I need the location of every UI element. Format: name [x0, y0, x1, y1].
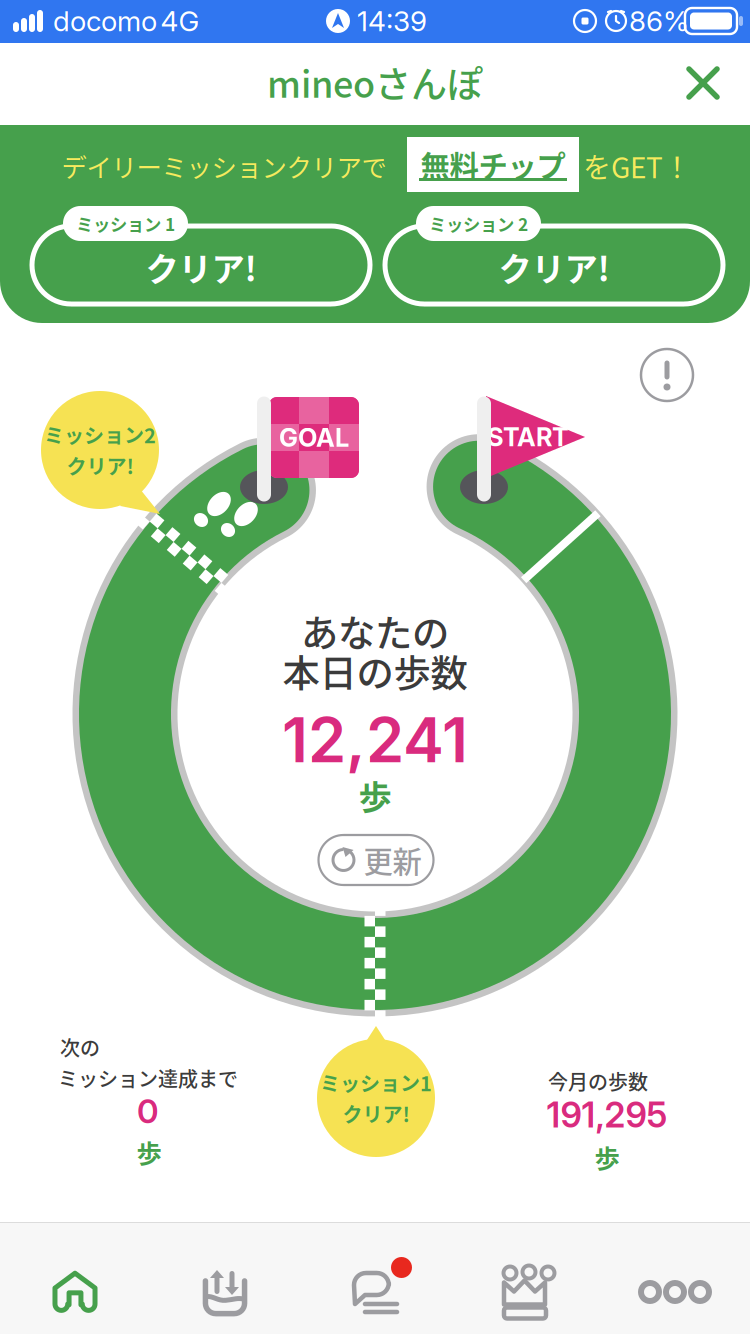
- button[interactable]: ヘルプ: [638, 346, 696, 404]
- staticText: クリア!: [145, 243, 256, 291]
- staticText: 無料チップ: [420, 143, 565, 186]
- staticText: mineoさんぽ: [267, 56, 483, 108]
- button[interactable]: 更新: [314, 831, 438, 889]
- staticText: クリア!: [342, 1099, 409, 1128]
- staticText: 更新: [363, 839, 421, 881]
- staticText: クリア!: [66, 451, 133, 480]
- staticText: 4G: [160, 4, 199, 38]
- staticText: デイリーミッションクリアで: [61, 148, 386, 184]
- staticText: ミッション1: [320, 1068, 432, 1097]
- button[interactable]: 閉じる: [665, 45, 741, 121]
- button[interactable]: クリア!: [32, 206, 370, 306]
- staticText: 歩: [358, 771, 391, 819]
- button[interactable]: クリア!: [385, 206, 723, 306]
- staticText: 0: [137, 1091, 159, 1131]
- staticText: ミッション 1: [76, 211, 175, 236]
- staticText: をGET！: [583, 146, 691, 186]
- staticText: ミッション 2: [429, 211, 528, 236]
- staticText: 14:39: [357, 4, 427, 38]
- button[interactable]: ランキング: [450, 1222, 600, 1334]
- staticText: あなたの: [301, 604, 449, 658]
- staticText: START: [487, 422, 569, 452]
- staticText: ミッション達成まで: [58, 1063, 238, 1092]
- button[interactable]: チャット: [300, 1222, 450, 1334]
- staticText: 191,295: [546, 1094, 667, 1136]
- button[interactable]: ホーム: [0, 1222, 150, 1334]
- staticText: 今月の歩数: [548, 1066, 648, 1095]
- staticText: docomo: [53, 4, 157, 38]
- button[interactable]: その他: [600, 1222, 750, 1334]
- staticText: 歩: [136, 1134, 161, 1170]
- staticText: クリア!: [498, 243, 609, 291]
- staticText: 86%: [629, 4, 689, 38]
- staticText: 12,241: [282, 703, 468, 777]
- staticText: 次の: [60, 1032, 100, 1061]
- staticText: ミッション2: [44, 420, 156, 449]
- staticText: GOAL: [279, 422, 349, 453]
- staticText: 本日の歩数: [282, 644, 467, 698]
- button[interactable]: データ: [150, 1222, 300, 1334]
- staticText: 歩: [594, 1139, 619, 1175]
